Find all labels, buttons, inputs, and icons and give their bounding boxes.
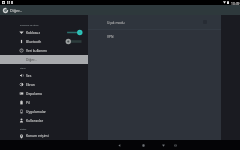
staticText: VPN <box>107 34 114 38</box>
button[interactable]: Ekran <box>0 80 88 89</box>
button[interactable]: Back <box>116 142 123 149</box>
button[interactable]: Konum erişimi <box>0 132 88 140</box>
button[interactable]: Kablosuz <box>0 28 88 37</box>
staticText: Uygulamalar <box>26 109 46 113</box>
staticText: Ses <box>26 73 32 77</box>
button[interactable]: Pil <box>0 98 88 107</box>
button[interactable]: Home <box>140 142 147 149</box>
button[interactable]: Depolama <box>0 89 88 98</box>
staticText: Pil <box>26 100 30 104</box>
button[interactable]: Bluetooth <box>0 37 88 46</box>
staticText: Diğer... <box>26 57 37 61</box>
staticText: Kablosuz <box>26 30 40 34</box>
button[interactable]: Uçak modu <box>88 15 221 29</box>
button[interactable]: Screenshot <box>172 142 179 149</box>
staticText: Kullanıcılar <box>26 118 44 122</box>
button[interactable]: VPN <box>88 30 221 42</box>
staticText: KABLOSUZ VE AĞLAR <box>20 24 39 26</box>
staticText: KİŞİSEL <box>20 128 27 130</box>
button[interactable]: Settings <box>3 8 8 13</box>
staticText: Depolama <box>26 91 42 95</box>
button[interactable]: Kullanıcılar <box>0 116 88 125</box>
button[interactable]: Veri kullanımı <box>0 46 88 55</box>
staticText: CİHAZ <box>20 67 26 69</box>
staticText: 10:39 <box>231 1 240 5</box>
staticText: Veri kullanımı <box>26 48 48 52</box>
staticText: Ekran <box>26 82 35 86</box>
button[interactable]: Ses <box>0 71 88 80</box>
button[interactable]: Bluetooth off <box>64 37 84 46</box>
button[interactable]: Kablosuz on <box>64 28 84 37</box>
button[interactable]: Diğer... <box>0 55 88 64</box>
staticText: Uçak modu <box>107 20 125 24</box>
staticText: Bluetooth <box>26 39 42 43</box>
button[interactable]: Recent apps <box>160 142 167 149</box>
staticText: Diğer... <box>10 8 23 13</box>
staticText: Konum erişimi <box>26 133 49 137</box>
button[interactable]: Uygulamalar <box>0 107 88 116</box>
